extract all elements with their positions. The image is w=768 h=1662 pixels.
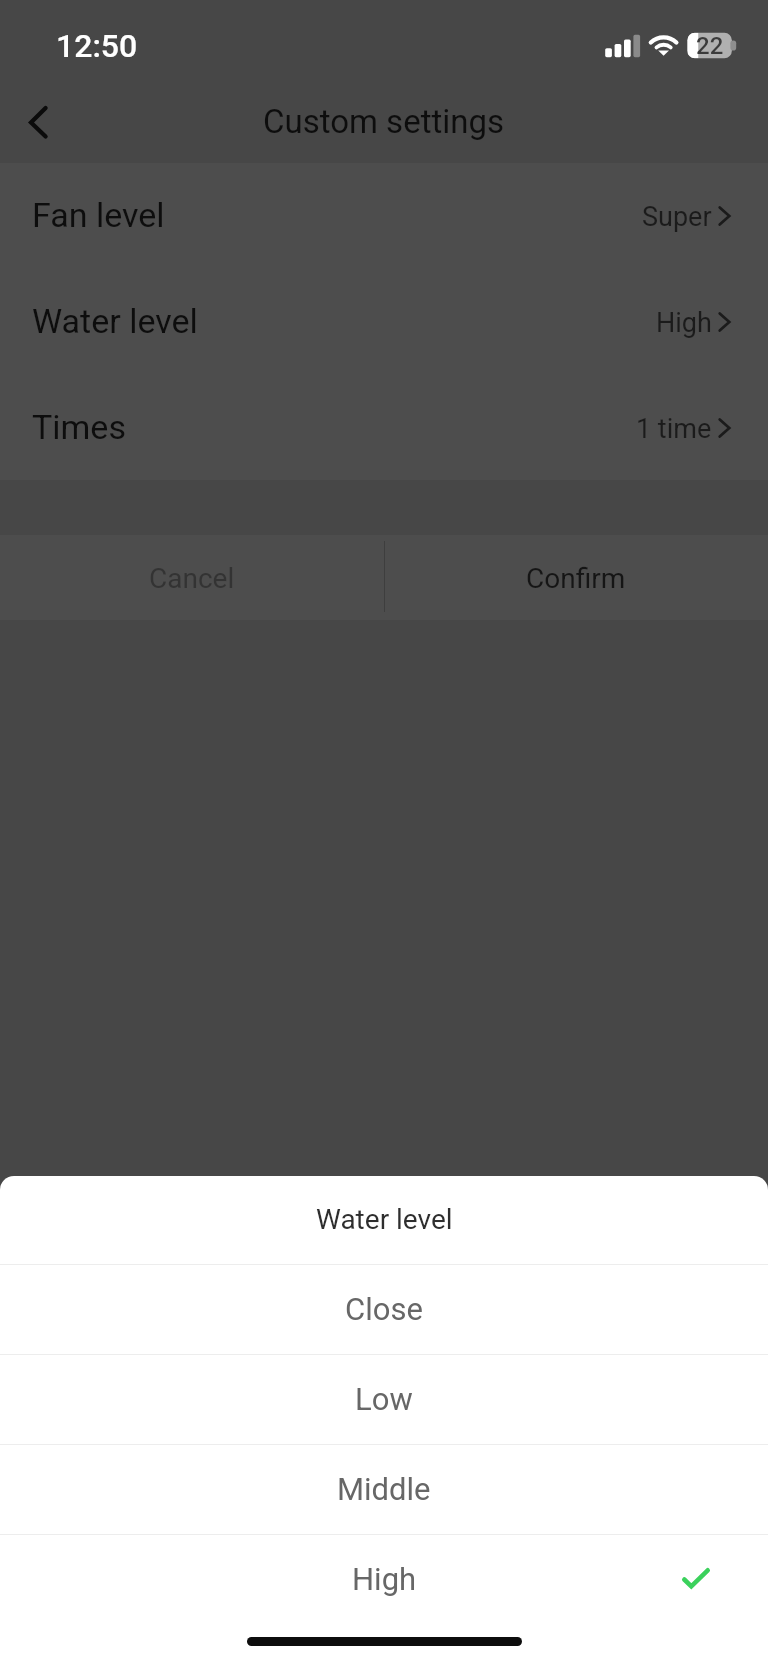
staticText: Confirm — [526, 562, 626, 595]
button[interactable]: Fan level — [0, 163, 768, 269]
staticText: Low — [355, 1381, 413, 1417]
button[interactable]: Confirm — [384, 535, 768, 620]
button[interactable]: Low — [0, 1355, 768, 1444]
button[interactable]: Water level — [0, 269, 768, 375]
staticText: Close — [345, 1291, 423, 1327]
staticText: 1 time — [636, 413, 712, 445]
button[interactable]: High — [0, 1535, 768, 1624]
staticText: Custom settings — [263, 102, 505, 141]
button[interactable]: Back — [0, 95, 62, 157]
button[interactable]: Times — [0, 375, 768, 480]
staticText: High — [352, 1561, 417, 1597]
staticText: Water level — [316, 1203, 453, 1236]
staticText: Water level — [32, 301, 198, 341]
staticText: High — [656, 307, 712, 339]
staticText: 12:50 — [56, 27, 138, 65]
staticText: Middle — [337, 1471, 431, 1507]
staticText: Fan level — [32, 195, 165, 235]
staticText: Cancel — [149, 562, 235, 595]
button[interactable]: Middle — [0, 1445, 768, 1534]
staticText: Super — [642, 201, 712, 233]
button[interactable]: Close — [0, 1265, 768, 1354]
staticText: 22 — [696, 32, 724, 57]
staticText: Times — [32, 407, 126, 447]
